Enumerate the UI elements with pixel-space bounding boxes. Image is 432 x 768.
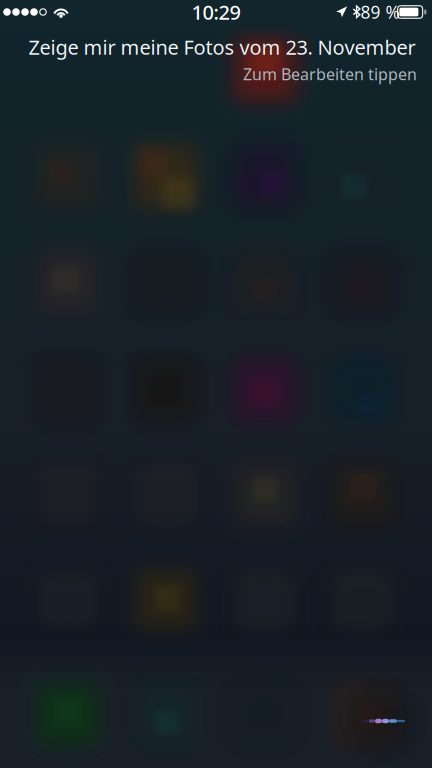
- staticText: 89 %: [360, 0, 399, 23]
- staticText: Zum Bearbeiten tippen: [243, 63, 417, 85]
- staticText: Zeige mir meine Fotos vom 23. November: [28, 34, 415, 60]
- button[interactable]: Zum Bearbeiten tippen: [239, 60, 421, 88]
- staticText: 10:29: [191, 0, 240, 25]
